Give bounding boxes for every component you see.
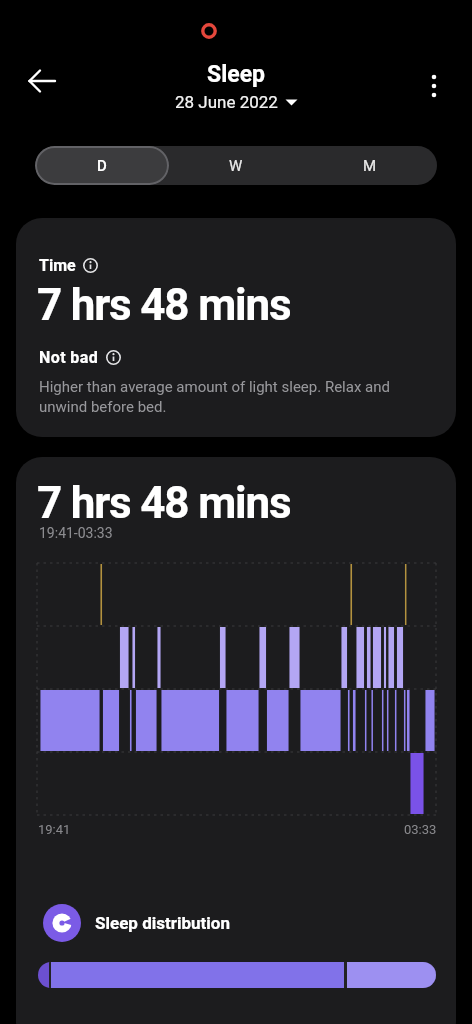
staticText: M [363, 157, 377, 175]
staticText: Sleep distribution [95, 913, 230, 933]
staticText: W [229, 157, 243, 175]
staticText: Time [39, 256, 76, 275]
staticText: Higher than average amount of light slee… [39, 378, 390, 415]
staticText: Not bad [39, 348, 99, 367]
staticText: D [97, 157, 107, 175]
staticText: 19:41-03:33 [39, 525, 113, 541]
staticText: 28 June 2022 [175, 92, 278, 112]
button[interactable]: W [169, 146, 303, 185]
button[interactable]: M [303, 146, 437, 185]
staticText: 19:41 [38, 822, 71, 837]
button[interactable]: Sleep distribution [43, 904, 230, 942]
button[interactable] [18, 57, 66, 105]
staticText: Sleep [207, 61, 266, 88]
staticText: 7 hrs 48 mins [37, 279, 291, 331]
button[interactable]: D [35, 146, 169, 185]
button[interactable] [410, 62, 458, 110]
staticText: 03:33 [404, 822, 437, 837]
button[interactable]: 28 June 2022 [175, 92, 298, 112]
staticText: 7 hrs 48 mins [37, 477, 291, 529]
button[interactable]: Time [16, 218, 456, 437]
